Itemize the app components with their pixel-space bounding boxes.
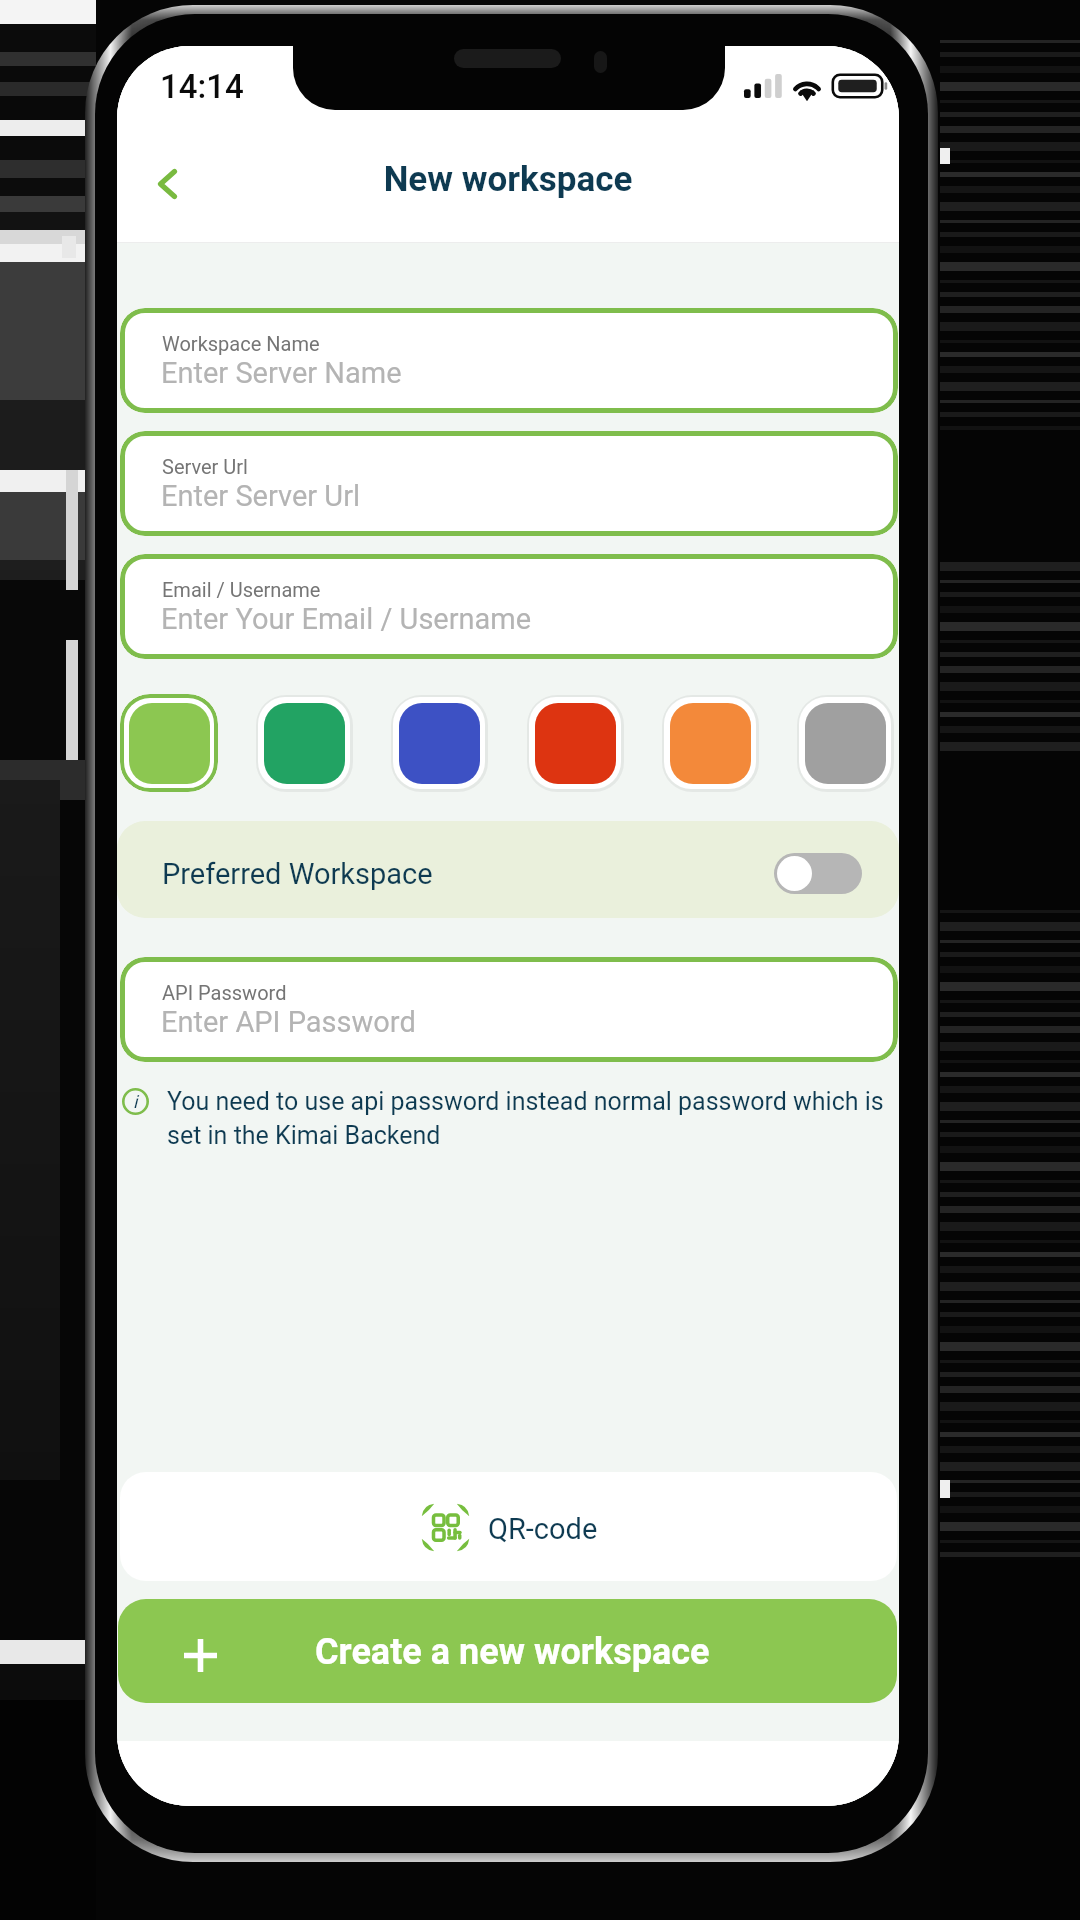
staticText: 14:14: [160, 67, 244, 106]
button[interactable]: Server Url: [120, 431, 898, 536]
button[interactable]: Preferred Workspace: [117, 821, 899, 918]
staticText: QR-code: [488, 1512, 598, 1546]
staticText: You need to use api password instead nor…: [167, 1087, 897, 1150]
button[interactable]: Color swatch 4: [525, 693, 625, 793]
button[interactable]: QR-code: [120, 1472, 897, 1581]
button[interactable]: Preferred workspace toggle: [774, 853, 862, 894]
button[interactable]: Back: [133, 150, 201, 218]
staticText: Preferred Workspace: [162, 857, 433, 891]
button[interactable]: API Password: [120, 957, 898, 1062]
button[interactable]: Color swatch 2: [254, 693, 354, 793]
staticText: Enter Your Email / Username: [161, 602, 532, 636]
staticText: Workspace Name: [162, 332, 320, 355]
staticText: Enter Server Url: [161, 479, 361, 513]
staticText: Email / Username: [162, 578, 321, 601]
staticText: Enter API Password: [161, 1005, 416, 1039]
staticText: i: [133, 1091, 138, 1112]
button[interactable]: Workspace Name: [120, 308, 898, 413]
button[interactable]: Color swatch 1: [119, 693, 219, 793]
staticText: New workspace: [117, 159, 899, 200]
staticText: Enter Server Name: [161, 356, 402, 390]
button[interactable]: Color swatch 6: [795, 693, 895, 793]
button[interactable]: Color swatch 5: [660, 693, 760, 793]
button[interactable]: Color swatch 3: [389, 693, 489, 793]
staticText: Create a new workspace: [315, 1631, 710, 1673]
button[interactable]: Email / Username: [120, 554, 898, 659]
button[interactable]: Create a new workspace: [118, 1599, 897, 1703]
staticText: API Password: [162, 981, 287, 1004]
staticText: Server Url: [162, 455, 248, 478]
